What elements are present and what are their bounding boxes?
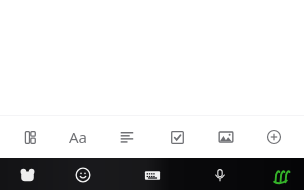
button[interactable]: Insert image: [209, 120, 243, 154]
button[interactable]: Checklist: [160, 120, 194, 154]
button[interactable]: Voice input: [205, 160, 235, 190]
button[interactable]: Emoji: [68, 160, 98, 190]
button[interactable]: Baidu input method: [12, 160, 42, 190]
button[interactable]: Aa: [61, 120, 95, 154]
button[interactable]: Keyboard: [137, 160, 167, 190]
staticText: Aa: [69, 127, 88, 147]
button[interactable]: Add: [257, 120, 291, 154]
button[interactable]: Razer: [265, 160, 295, 190]
button[interactable]: Layout: [13, 120, 47, 154]
button[interactable]: Align left: [110, 120, 144, 154]
